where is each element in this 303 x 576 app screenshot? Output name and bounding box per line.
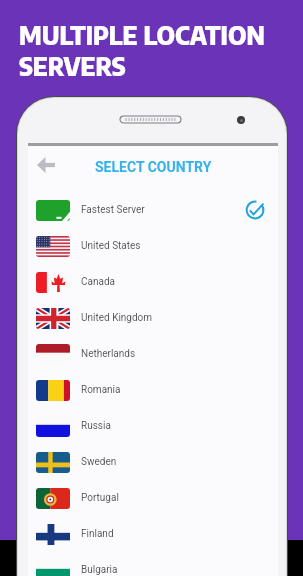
staticText: Romania bbox=[81, 384, 121, 396]
staticText: Finland bbox=[81, 528, 114, 540]
staticText: SELECT COUNTRY bbox=[95, 159, 212, 175]
staticText: SERVERS bbox=[19, 50, 126, 81]
button[interactable]: Russia bbox=[28, 408, 278, 444]
staticText: Portugal bbox=[81, 492, 119, 504]
button[interactable]: United Kingdom bbox=[28, 300, 278, 336]
button[interactable]: Finland bbox=[28, 516, 278, 552]
staticText: United States bbox=[81, 240, 141, 252]
button[interactable]: Fastest Server bbox=[28, 192, 278, 228]
staticText: Russia bbox=[81, 420, 111, 432]
button[interactable]: Romania bbox=[28, 372, 278, 408]
staticText: Canada bbox=[81, 276, 115, 288]
button[interactable]: Netherlands bbox=[28, 336, 278, 372]
staticText: MULTIPLE LOCATION bbox=[19, 19, 265, 50]
button[interactable]: United States bbox=[28, 228, 278, 264]
button[interactable]: Bulgaria bbox=[28, 552, 278, 576]
button[interactable]: Sweden bbox=[28, 444, 278, 480]
staticText: Bulgaria bbox=[81, 564, 118, 576]
staticText: United Kingdom bbox=[81, 312, 153, 324]
staticText: Sweden bbox=[81, 456, 117, 468]
staticText: Fastest Server bbox=[81, 204, 145, 216]
button[interactable]: Canada bbox=[28, 264, 278, 300]
button[interactable]: Back bbox=[31, 150, 61, 180]
button[interactable]: Portugal bbox=[28, 480, 278, 516]
staticText: Netherlands bbox=[81, 348, 136, 360]
